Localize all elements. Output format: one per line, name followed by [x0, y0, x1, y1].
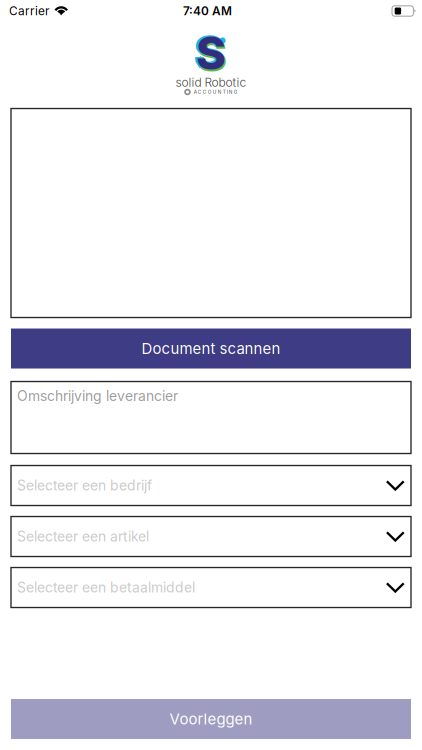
staticText: Selecteer een artikel [17, 528, 149, 545]
staticText: A C C O U N T I N G [194, 89, 238, 95]
button[interactable]: Selecteer een betaalmiddel [11, 567, 411, 607]
staticText: Selecteer een betaalmiddel [17, 579, 195, 596]
staticText: Voorleggen [169, 710, 252, 728]
staticText: S [196, 26, 228, 83]
button[interactable]: Selecteer een bedrijf [11, 465, 411, 505]
staticText: Carrier [9, 4, 49, 18]
staticText: Omschrijving leverancier [17, 387, 178, 404]
staticText: Document scannen [141, 339, 280, 358]
staticText: 7:40 AM [183, 4, 232, 18]
staticText: S [196, 26, 226, 80]
staticText: S [194, 23, 226, 81]
button[interactable]: Voorleggen [11, 699, 411, 739]
button[interactable]: Selecteer een artikel [11, 516, 411, 556]
staticText: solid Robotic [175, 75, 246, 89]
button[interactable]: Document scannen [11, 328, 411, 368]
staticText: Selecteer een bedrijf [17, 477, 152, 494]
button[interactable]: Omschrijving leverancier [11, 381, 411, 453]
